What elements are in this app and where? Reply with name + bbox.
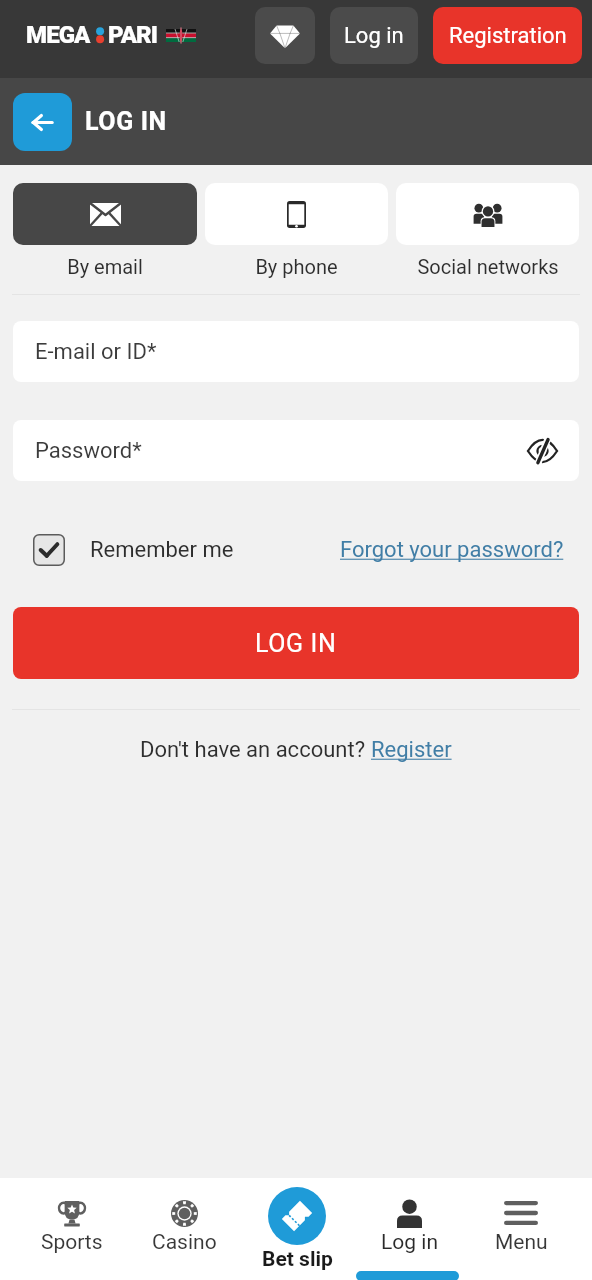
staticText: LOG IN <box>255 629 337 658</box>
button[interactable]: Back <box>13 93 72 151</box>
button[interactable]: Show password <box>518 427 566 475</box>
staticText: Register <box>371 737 452 763</box>
staticText: Log in <box>344 23 404 49</box>
button[interactable]: Sports <box>15 1178 128 1280</box>
button[interactable]: Promo <box>255 7 315 64</box>
button[interactable]: By phone <box>205 183 388 278</box>
button[interactable]: Log in <box>353 1178 465 1280</box>
button[interactable]: Log in <box>330 7 418 64</box>
staticText: Don't have an account? <box>140 737 371 763</box>
button[interactable]: Casino <box>128 1178 241 1280</box>
staticText: Sports <box>41 1230 103 1255</box>
button[interactable]: Remember me <box>0 534 244 566</box>
button[interactable]: Registration <box>433 7 582 64</box>
button[interactable]: E-mail or ID* <box>13 321 579 382</box>
button[interactable]: Social networks <box>396 183 579 278</box>
staticText: Casino <box>152 1230 217 1255</box>
staticText: By email <box>67 255 143 278</box>
staticText: By phone <box>255 255 338 278</box>
staticText: MEGA <box>26 21 90 49</box>
button[interactable]: Register <box>371 737 452 763</box>
staticText: Log in <box>381 1230 438 1255</box>
staticText: LOG IN <box>85 107 167 136</box>
staticText: Registration <box>449 23 567 49</box>
staticText: Remember me <box>90 537 234 563</box>
staticText: Forgot your password? <box>340 537 564 563</box>
button[interactable]: By email <box>13 183 197 278</box>
staticText: Social networks <box>417 255 559 278</box>
button[interactable]: Password* <box>13 420 579 481</box>
button[interactable]: LOG IN <box>13 607 579 679</box>
button[interactable]: Forgot your password? <box>340 537 592 563</box>
staticText: Bet slip <box>262 1247 333 1272</box>
staticText: Menu <box>495 1230 548 1255</box>
button[interactable]: Bet slip <box>241 1178 353 1280</box>
staticText: Password* <box>35 438 142 464</box>
staticText: E-mail or ID* <box>35 339 157 365</box>
staticText: PARI <box>108 21 158 49</box>
button[interactable]: Menu <box>465 1178 577 1280</box>
